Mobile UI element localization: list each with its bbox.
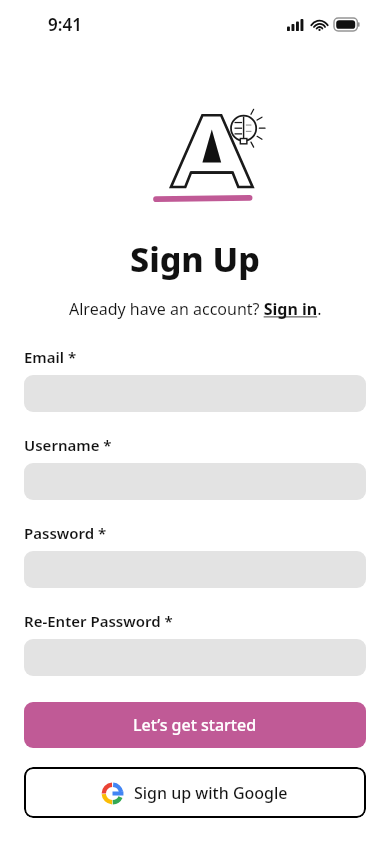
button[interactable]: Already have an account? Sign in. [69, 298, 322, 320]
staticText: Re-Enter Password * [24, 611, 173, 631]
staticText: Sign Up [130, 236, 260, 282]
staticText: Username * [24, 435, 112, 455]
button[interactable]: Let’s get started [24, 702, 366, 748]
staticText: Let’s get started [133, 714, 257, 736]
staticText: Already have an account? Sign in. [69, 298, 322, 320]
button[interactable]: Sign up with Google [24, 767, 366, 818]
other: App logo [135, 110, 255, 214]
staticText: Password * [24, 523, 107, 543]
staticText: Email * [24, 347, 77, 367]
staticText: 9:41 [48, 13, 82, 36]
staticText: Sign up with Google [134, 782, 288, 804]
